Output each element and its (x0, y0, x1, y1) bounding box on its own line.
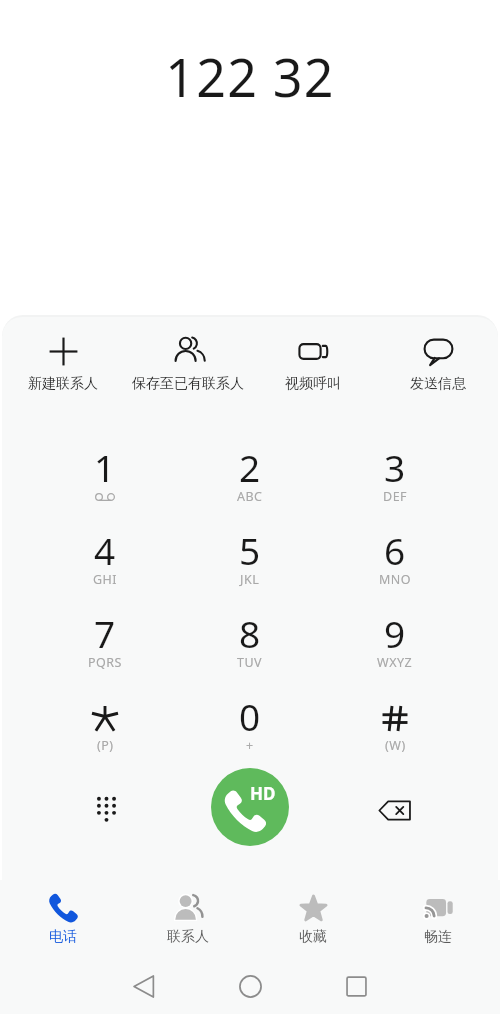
staticText: 9 (384, 608, 406, 658)
staticText: 7 (94, 608, 116, 658)
button[interactable]: 1 (45, 429, 165, 509)
button[interactable]: (P) (45, 678, 165, 758)
staticText: 新建联系人 (28, 375, 98, 393)
button[interactable]: 9 (335, 595, 455, 675)
button[interactable]: Call (211, 768, 289, 846)
button[interactable]: 新建联系人 (0, 337, 125, 401)
staticText: 1 (94, 442, 116, 492)
button[interactable]: (W) (335, 678, 455, 758)
staticText: 畅连 (424, 928, 452, 946)
button[interactable]: 保存至已有联系人 (125, 337, 250, 401)
staticText: 视频呼叫 (285, 375, 341, 393)
staticText: 0 (239, 691, 261, 741)
staticText: DEF (383, 488, 408, 505)
staticText: GHI (93, 571, 118, 588)
button[interactable]: Backspace (360, 784, 430, 836)
button[interactable]: 电话 (0, 893, 125, 959)
button[interactable]: 0 (190, 678, 310, 758)
staticText: JKL (240, 571, 260, 588)
staticText: 8 (239, 608, 261, 658)
button[interactable]: 收藏 (250, 893, 375, 959)
staticText: 发送信息 (410, 375, 466, 393)
staticText: ABC (237, 488, 263, 505)
staticText: 4 (94, 525, 116, 575)
staticText: WXYZ (377, 654, 413, 671)
button[interactable]: 畅连 (375, 893, 500, 959)
staticText: TUV (237, 654, 263, 671)
staticText: 电话 (49, 928, 77, 946)
button[interactable]: 视频呼叫 (250, 337, 375, 401)
button[interactable]: 4 (45, 512, 165, 592)
staticText: (P) (97, 737, 114, 754)
staticText: 保存至已有联系人 (132, 375, 244, 393)
button[interactable]: 7 (45, 595, 165, 675)
button[interactable]: Recents (328, 958, 384, 1014)
button[interactable]: Show dialpad keyboard (71, 782, 141, 834)
button[interactable]: 2 (190, 429, 310, 509)
staticText: 收藏 (299, 928, 327, 946)
button[interactable]: Back (115, 958, 171, 1014)
button[interactable]: 8 (190, 595, 310, 675)
staticText: 5 (239, 525, 261, 575)
staticText: MNO (379, 571, 412, 588)
staticText: PQRS (88, 654, 122, 671)
button[interactable]: 6 (335, 512, 455, 592)
staticText: 联系人 (167, 928, 209, 946)
staticText: + (246, 737, 254, 754)
button[interactable]: 发送信息 (375, 337, 500, 401)
button[interactable]: Home (222, 958, 278, 1014)
staticText: 3 (384, 442, 406, 492)
staticText: 122 32 (70, 41, 430, 111)
staticText: HD (250, 782, 276, 805)
button[interactable]: 联系人 (125, 893, 250, 959)
staticText: 6 (384, 525, 406, 575)
staticText: 2 (239, 442, 261, 492)
staticText: (W) (385, 737, 406, 754)
button[interactable]: 5 (190, 512, 310, 592)
button[interactable]: 3 (335, 429, 455, 509)
